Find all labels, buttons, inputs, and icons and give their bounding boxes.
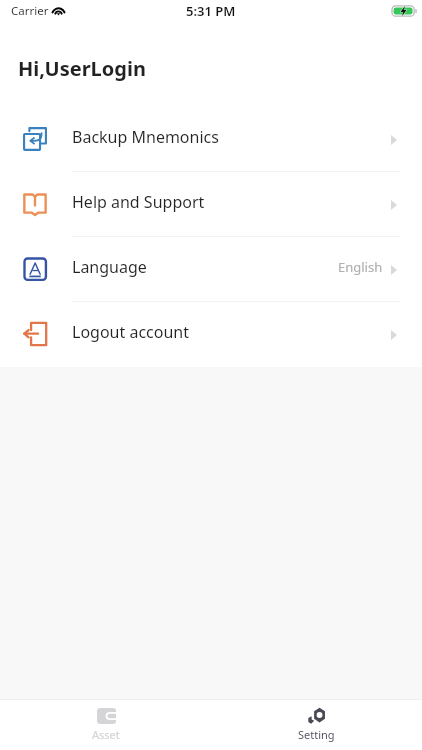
staticText: Language <box>72 256 147 278</box>
staticText: Setting <box>298 727 335 742</box>
staticText: Carrier <box>11 3 49 19</box>
staticText: Asset <box>92 727 120 742</box>
staticText: Backup Mnemonics <box>72 126 219 148</box>
staticText: 5:31 PM <box>186 2 236 20</box>
staticText: Help and Support <box>72 191 205 213</box>
staticText: Logout account <box>72 321 189 343</box>
button[interactable]: Asset <box>62 705 150 745</box>
button[interactable]: Help and Support <box>0 172 422 236</box>
button[interactable]: Setting <box>268 705 365 745</box>
button[interactable]: Language <box>0 237 422 301</box>
staticText: English <box>338 258 383 276</box>
button[interactable]: Logout account <box>0 302 422 366</box>
button[interactable]: Backup Mnemonics <box>0 107 422 171</box>
staticText: Hi,UserLogin <box>18 55 146 82</box>
